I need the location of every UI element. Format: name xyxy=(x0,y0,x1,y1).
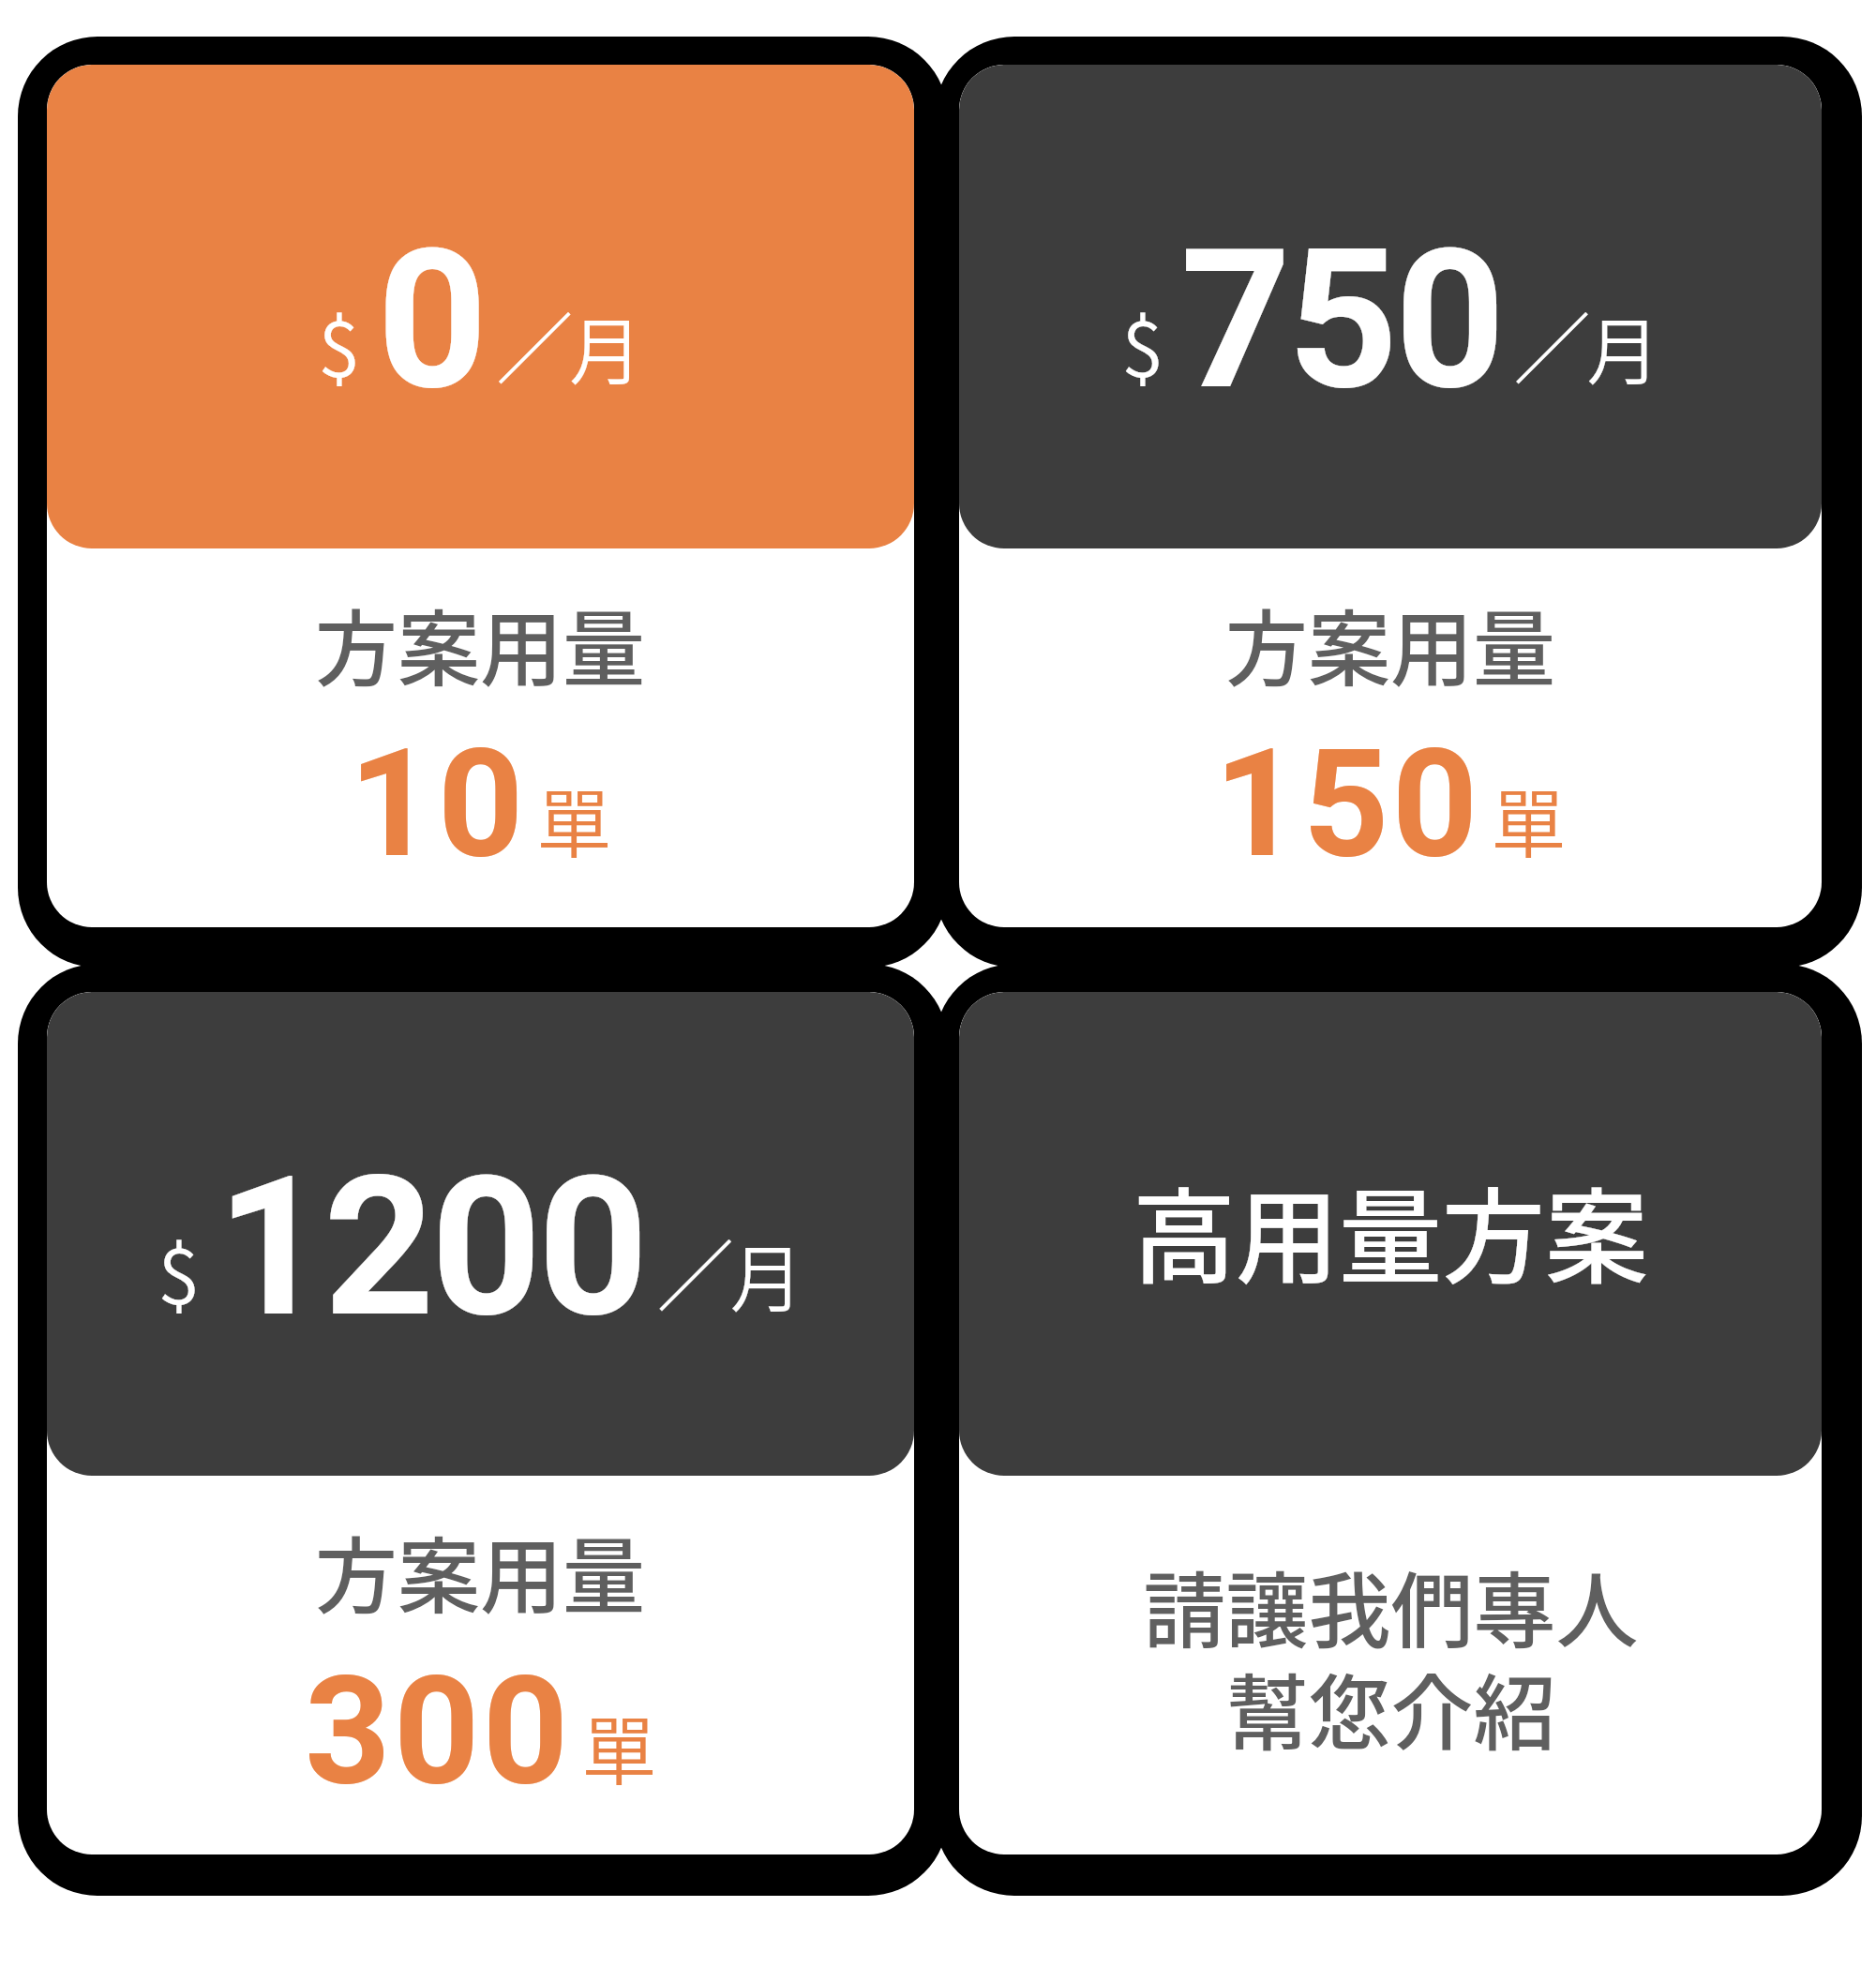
staticText: 方案用量 xyxy=(1225,583,1556,702)
staticText: 方案用量 xyxy=(315,1510,646,1629)
button[interactable]: 每月 $1200 方案，方案用量 300 單 xyxy=(47,992,914,1854)
staticText: 高用量方案 xyxy=(1133,1155,1648,1304)
staticText: $0／月 xyxy=(318,207,643,433)
staticText: 150單 xyxy=(1214,716,1567,893)
staticText: 請讓我們專人 幫您介紹 xyxy=(1143,1545,1639,1767)
button[interactable]: 免費方案 每月 $0，方案用量 10 單 xyxy=(47,65,914,927)
staticText: $750／月 xyxy=(1121,207,1660,433)
button[interactable]: 高用量方案，請讓我們專人幫您介紹 xyxy=(959,992,1822,1854)
button[interactable]: 每月 $750 方案，方案用量 150 單 xyxy=(959,65,1822,927)
staticText: 300單 xyxy=(305,1644,657,1820)
staticText: 方案用量 xyxy=(315,583,646,702)
staticText: $1200／月 xyxy=(158,1134,803,1360)
staticText: 10單 xyxy=(349,716,612,893)
